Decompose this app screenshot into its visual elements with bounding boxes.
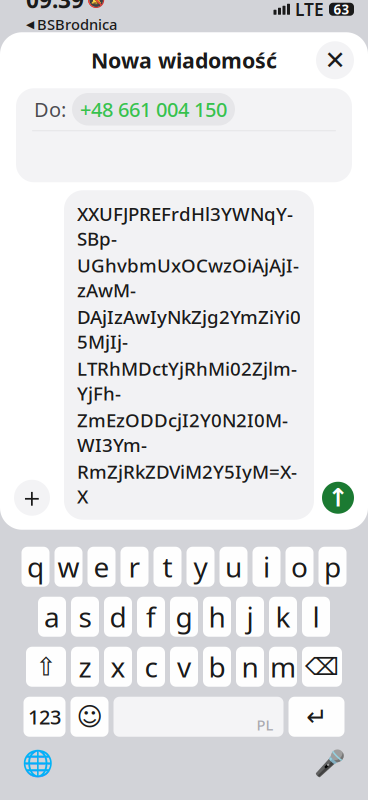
staticText: 09:39: [26, 0, 84, 15]
staticText: s: [78, 598, 91, 635]
staticText: ⇧: [35, 652, 56, 681]
staticText: a: [44, 598, 60, 635]
staticText: o: [291, 548, 308, 585]
button[interactable]: p: [318, 547, 346, 587]
button[interactable]: k: [269, 597, 297, 637]
staticText: BSBrodnica: [37, 15, 117, 34]
staticText: 63: [333, 0, 349, 18]
staticText: k: [275, 598, 290, 635]
button[interactable]: a: [38, 597, 66, 637]
button[interactable]: d: [104, 597, 132, 637]
staticText: c: [144, 648, 157, 685]
staticText: 🔕: [87, 0, 105, 8]
staticText: XXUFJPREFrdHl3YWNqYSBp-: [77, 201, 293, 251]
staticText: ↑: [327, 483, 348, 512]
button[interactable]: f: [137, 597, 165, 637]
staticText: d: [109, 598, 126, 635]
staticText: ZmEzODDcjI2Y0N2I0MWI3Ym-: [77, 408, 288, 457]
staticText: RmZjRkZDViM2Y5IyM=XX: [77, 459, 297, 509]
button[interactable]: s: [71, 597, 99, 637]
staticText: b: [208, 648, 225, 685]
button[interactable]: u: [219, 547, 247, 587]
staticText: r: [128, 548, 140, 585]
staticText: p: [324, 548, 341, 585]
staticText: ⌫: [305, 653, 339, 680]
button[interactable]: l: [302, 597, 330, 637]
button[interactable]: ⇧: [26, 647, 66, 687]
button[interactable]: x: [104, 647, 132, 687]
staticText: j: [246, 598, 253, 635]
button[interactable]: spacja: [113, 697, 283, 737]
staticText: DAjIzAwIyNkZjg2YmZiYi05MjIj-: [77, 304, 301, 354]
staticText: ↵: [306, 702, 327, 731]
staticText: f: [146, 598, 156, 635]
staticText: PL: [256, 715, 273, 734]
staticText: l: [312, 598, 319, 635]
staticText: v: [177, 648, 191, 685]
button[interactable]: g: [170, 597, 198, 637]
staticText: 🎤: [314, 749, 346, 778]
staticText: w: [57, 548, 79, 585]
button[interactable]: t: [153, 547, 181, 587]
button[interactable]: n: [236, 647, 264, 687]
staticText: t: [162, 548, 172, 585]
staticText: Nowa wiadomość: [91, 46, 277, 74]
staticText: ＋: [18, 481, 45, 514]
button[interactable]: ⌫: [302, 647, 342, 687]
button[interactable]: ↵: [288, 697, 344, 737]
button[interactable]: r: [120, 547, 148, 587]
staticText: g: [175, 598, 192, 635]
staticText: e: [93, 548, 109, 585]
staticText: LTE: [295, 0, 324, 21]
button[interactable]: w: [54, 547, 82, 587]
staticText: h: [208, 598, 225, 635]
button[interactable]: i: [252, 547, 280, 587]
button[interactable]: Dodaj załącznik: [14, 480, 50, 516]
button[interactable]: z: [71, 647, 99, 687]
button[interactable]: e: [87, 547, 115, 587]
staticText: UGhvbmUxOCwzOiAjAjIzAwM-: [77, 253, 299, 302]
button[interactable]: 123: [23, 697, 65, 737]
button[interactable]: Wyślij: [322, 482, 354, 514]
button[interactable]: h: [203, 597, 231, 637]
staticText: ☺: [76, 702, 102, 731]
staticText: m: [270, 648, 296, 685]
button[interactable]: m: [269, 647, 297, 687]
button[interactable]: Dyktowanie: [310, 747, 350, 781]
button[interactable]: j: [236, 597, 264, 637]
staticText: u: [225, 548, 242, 585]
button[interactable]: ☺: [70, 697, 108, 737]
staticText: i: [263, 548, 270, 585]
staticText: z: [78, 648, 91, 685]
staticText: x: [110, 648, 125, 685]
button[interactable]: v: [170, 647, 198, 687]
button[interactable]: c: [137, 647, 165, 687]
button[interactable]: Zmień język: [18, 747, 58, 781]
staticText: q: [27, 548, 44, 585]
button[interactable]: o: [285, 547, 313, 587]
staticText: 123: [28, 703, 61, 730]
staticText: ✕: [324, 46, 345, 75]
staticText: n: [241, 648, 258, 685]
button[interactable]: Zamknij: [316, 41, 354, 79]
button[interactable]: q: [21, 547, 49, 587]
staticText: 🌐: [22, 749, 54, 778]
button[interactable]: y: [186, 547, 214, 587]
button[interactable]: b: [203, 647, 231, 687]
button[interactable]: +48 661 004 150: [72, 93, 235, 126]
staticText: ◀: [26, 18, 34, 30]
staticText: Do:: [34, 96, 66, 123]
staticText: y: [193, 548, 207, 585]
staticText: LTRhMDctYjRhMi02ZjlmYjFh-: [77, 356, 297, 406]
staticText: +48 661 004 150: [80, 96, 227, 123]
